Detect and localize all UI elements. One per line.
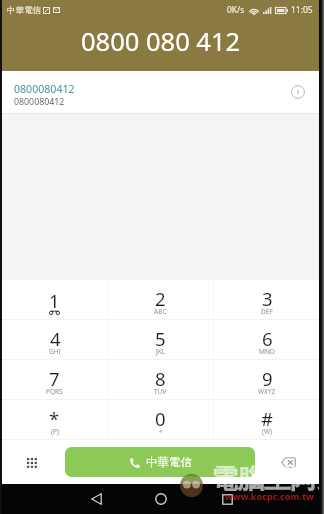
staticText: 7 bbox=[49, 366, 60, 391]
staticText: 電腦王阿達 bbox=[211, 462, 324, 495]
button[interactable]: 0 bbox=[108, 400, 213, 439]
staticText: 中華電信 bbox=[7, 5, 41, 16]
staticText: 4 bbox=[50, 326, 61, 351]
staticText: ABC bbox=[154, 307, 167, 316]
staticText: 11:05 bbox=[291, 4, 313, 16]
button[interactable]: 5 bbox=[108, 320, 213, 359]
staticText: WXYZ bbox=[258, 387, 276, 396]
staticText: 5 bbox=[155, 326, 166, 351]
button[interactable]: Contact details bbox=[286, 80, 310, 104]
staticText: 0800080412 bbox=[14, 96, 65, 108]
staticText: www.kocpc.com.tw bbox=[225, 490, 314, 503]
button[interactable]: Home bbox=[147, 485, 175, 513]
staticText: GHI bbox=[49, 347, 61, 356]
staticText: 3 bbox=[262, 286, 273, 311]
button[interactable]: 4 bbox=[2, 320, 107, 359]
staticText: + bbox=[159, 427, 163, 436]
button[interactable]: 2 bbox=[108, 280, 213, 319]
button[interactable]: 中華電信 bbox=[65, 447, 255, 477]
staticText: 2 bbox=[155, 286, 166, 311]
button[interactable]: 0800080412 bbox=[2, 71, 319, 113]
staticText: (W) bbox=[262, 427, 272, 436]
button[interactable]: Keypad bbox=[20, 450, 44, 474]
staticText: # bbox=[261, 406, 273, 431]
button[interactable]: * bbox=[2, 400, 107, 439]
staticText: 0800 080 412 bbox=[81, 24, 241, 59]
staticText: 中華電信 bbox=[146, 455, 192, 469]
button[interactable]: # bbox=[214, 400, 319, 439]
staticText: 0K/s bbox=[227, 4, 245, 16]
staticText: PQRS bbox=[46, 387, 63, 396]
staticText: 8 bbox=[155, 366, 166, 391]
staticText: 0 bbox=[155, 406, 166, 431]
staticText: 9 bbox=[262, 366, 273, 391]
button[interactable]: 8 bbox=[108, 360, 213, 399]
button[interactable]: Backspace bbox=[276, 450, 300, 474]
button[interactable]: Recents bbox=[213, 485, 241, 513]
staticText: * bbox=[49, 406, 60, 431]
button[interactable]: 1 bbox=[2, 280, 107, 319]
button[interactable]: Back bbox=[82, 485, 110, 513]
staticText: 6 bbox=[262, 326, 273, 351]
button[interactable]: 9 bbox=[214, 360, 319, 399]
staticText: 0800080412 bbox=[14, 82, 75, 96]
button[interactable]: 7 bbox=[2, 360, 107, 399]
staticText: (P) bbox=[51, 427, 59, 436]
staticText: TUV bbox=[154, 387, 167, 396]
staticText: DEF bbox=[261, 307, 273, 316]
staticText: MNO bbox=[259, 347, 275, 356]
staticText: 1 bbox=[49, 288, 60, 313]
staticText: JKL bbox=[156, 347, 166, 356]
button[interactable]: 3 bbox=[214, 280, 319, 319]
button[interactable]: 6 bbox=[214, 320, 319, 359]
